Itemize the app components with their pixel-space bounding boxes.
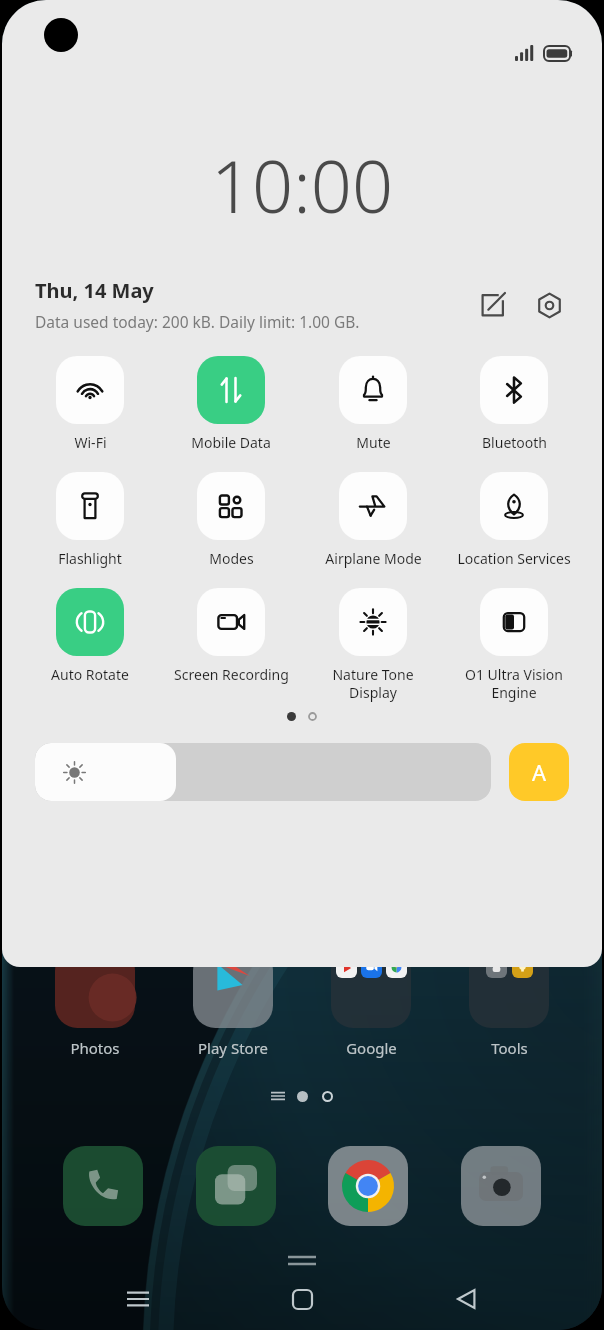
button[interactable]: Phone [61, 1144, 145, 1228]
button[interactable]: Settings [526, 282, 572, 328]
staticText: Airplane Mode [325, 549, 422, 568]
staticText: Auto Rotate [51, 665, 129, 684]
staticText: Modes [209, 549, 254, 568]
button[interactable]: Mobile Data [163, 356, 299, 452]
staticText: Wi-Fi [74, 433, 107, 452]
button[interactable]: Mute [305, 356, 441, 452]
staticText: Mobile Data [191, 433, 271, 452]
staticText: Screen Recording [174, 665, 289, 684]
button[interactable]: Location Services [446, 472, 582, 568]
button[interactable]: Wi-Fi [22, 356, 158, 452]
button[interactable]: Brightness [35, 743, 491, 801]
button[interactable]: Google [316, 946, 426, 1058]
staticText: Location Services [457, 549, 571, 568]
staticText: Bluetooth [482, 433, 547, 452]
button[interactable]: Messages [194, 1144, 278, 1228]
staticText: O1 Ultra Vision Engine [465, 665, 563, 702]
button[interactable]: Screen Recording [163, 588, 299, 684]
staticText: 10:00 [211, 136, 394, 234]
button[interactable]: Home [274, 1271, 330, 1327]
button[interactable]: Airplane Mode [305, 472, 441, 568]
button[interactable]: Flashlight [22, 472, 158, 568]
button[interactable]: Bluetooth [446, 356, 582, 452]
button[interactable]: Auto Rotate [22, 588, 158, 684]
button[interactable]: Camera [459, 1144, 543, 1228]
staticText: Thu, 14 May [35, 277, 154, 304]
button[interactable]: Recents [110, 1271, 166, 1327]
staticText: Flashlight [58, 549, 122, 568]
button[interactable]: Play Store [178, 946, 288, 1058]
button[interactable]: Tools [454, 946, 564, 1058]
staticText: Mute [356, 433, 391, 452]
staticText: Play Store [198, 1038, 268, 1058]
button[interactable]: Back [438, 1271, 494, 1327]
button[interactable]: Photos [40, 946, 150, 1058]
button[interactable]: O1 Ultra Vision Engine [446, 588, 582, 702]
staticText: Photos [70, 1038, 120, 1058]
button[interactable]: Edit tiles [470, 282, 516, 328]
button[interactable]: Chrome [326, 1144, 410, 1228]
staticText: Google [346, 1038, 397, 1058]
button[interactable]: A [509, 743, 569, 801]
staticText: Tools [491, 1038, 528, 1058]
button[interactable]: Modes [163, 472, 299, 568]
staticText: Data used today: 200 kB. Daily limit: 1.… [35, 311, 360, 332]
staticText: A [532, 757, 547, 787]
staticText: Nature Tone Display [332, 665, 414, 702]
button[interactable]: Nature Tone Display [305, 588, 441, 702]
